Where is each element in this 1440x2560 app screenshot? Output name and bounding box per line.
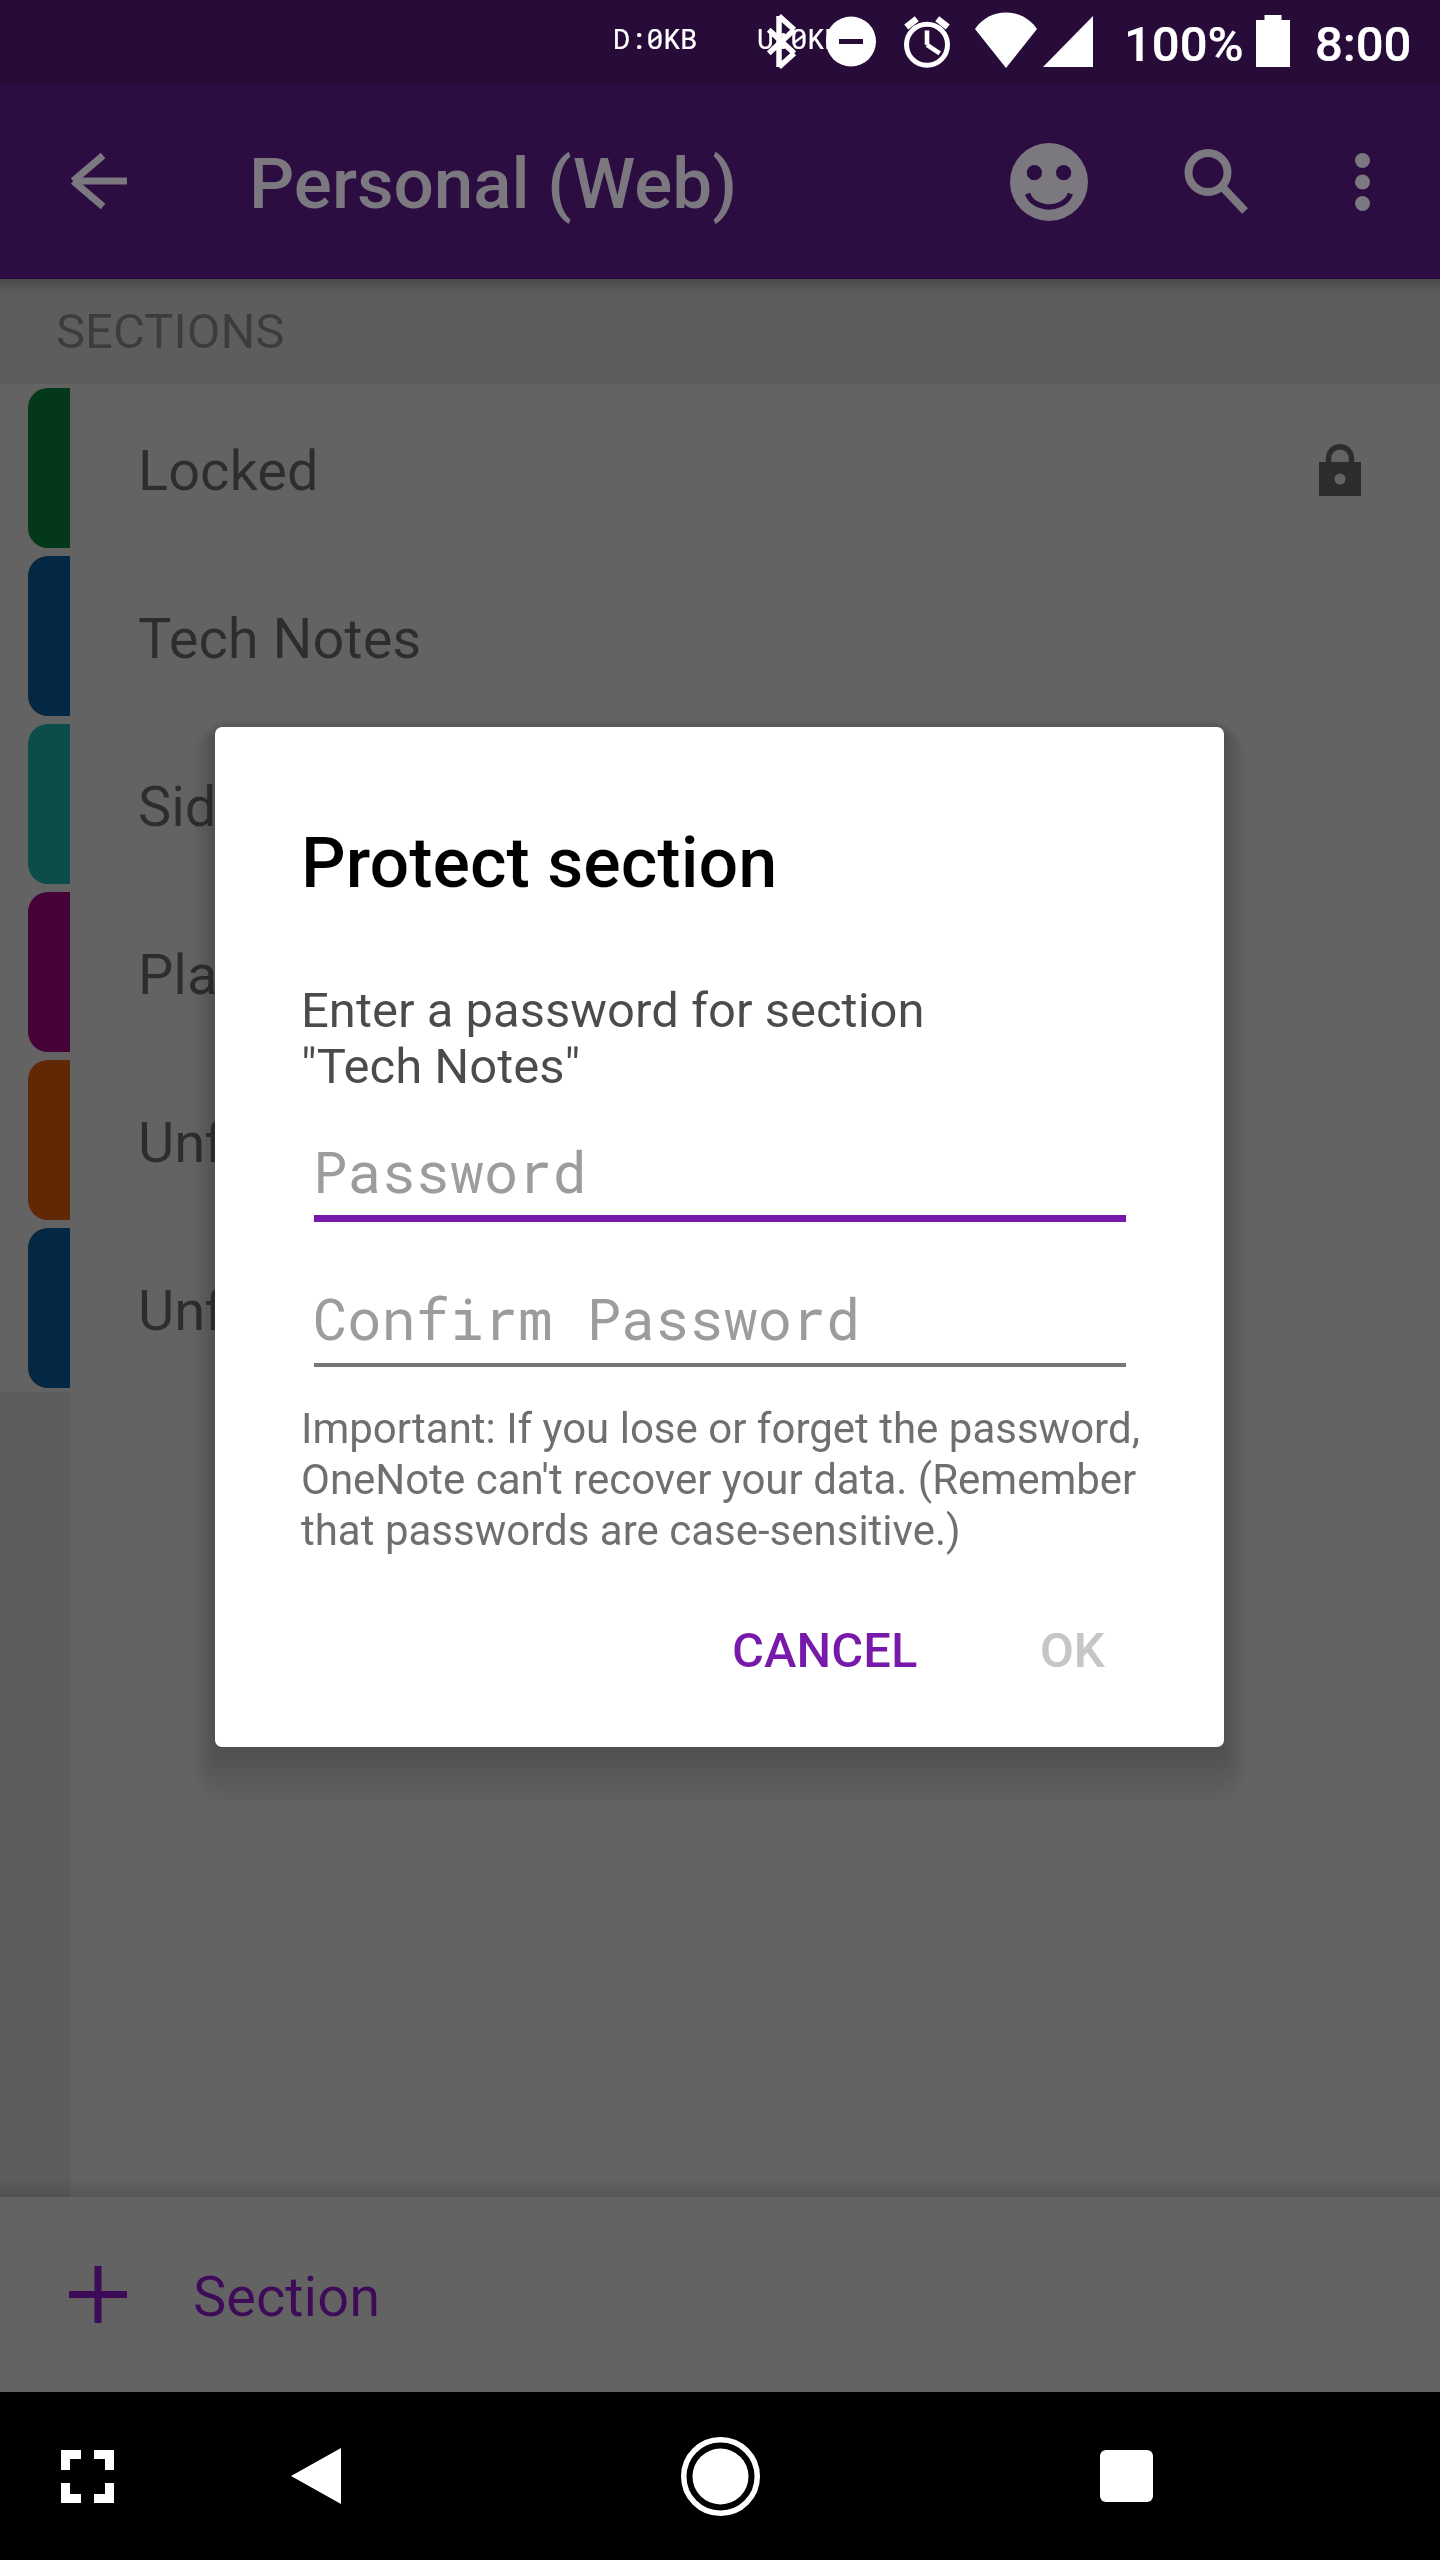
staticText: 8:00 [1315, 16, 1412, 73]
staticText: CANCEL [732, 1622, 918, 1679]
button[interactable]: Unfiled Notes [0, 1056, 1440, 1224]
staticText: Unfiled Notes [138, 1110, 474, 1176]
button[interactable]: OK [1006, 1596, 1139, 1705]
button[interactable]: Screenshot [0, 2392, 175, 2560]
staticText: Unfiled Notes [138, 1278, 474, 1344]
button[interactable]: Home [600, 2392, 840, 2560]
staticText: Protect section [301, 822, 778, 904]
staticText: D:0KB [613, 20, 698, 57]
button[interactable]: Search [1145, 111, 1286, 252]
button[interactable]: Tech Notes [0, 552, 1440, 720]
staticText: U:0KB [757, 20, 842, 57]
button[interactable]: More options [1292, 111, 1433, 252]
staticText: Section [193, 2264, 381, 2330]
staticText: Planning [138, 942, 356, 1008]
button[interactable]: Back [195, 2392, 437, 2560]
button[interactable]: Locked [0, 384, 1440, 552]
staticText: OK [1040, 1622, 1105, 1679]
staticText: SECTIONS [56, 303, 285, 360]
button[interactable]: Recent apps [1006, 2392, 1246, 2560]
button[interactable]: Planning [0, 888, 1440, 1056]
staticText: Important: If you lose or forget the pas… [301, 1404, 1140, 1556]
staticText: Password [313, 1133, 587, 1208]
button[interactable]: Section [0, 2197, 1440, 2392]
staticText: Side Projects [138, 774, 466, 840]
staticText: Locked [138, 438, 319, 504]
button[interactable]: Side Projects [0, 720, 1440, 888]
button[interactable]: Unfiled Notes [0, 1224, 1440, 1392]
staticText: Enter a password for section "Tech Notes… [301, 982, 925, 1095]
staticText: 100% [1124, 16, 1244, 73]
staticText: Tech Notes [138, 606, 422, 672]
staticText: Confirm Password [313, 1280, 861, 1355]
button[interactable]: Emoji [978, 111, 1119, 252]
staticText: Personal (Web) [249, 142, 737, 225]
button[interactable]: CANCEL [698, 1596, 952, 1705]
button[interactable]: Back [28, 111, 168, 251]
